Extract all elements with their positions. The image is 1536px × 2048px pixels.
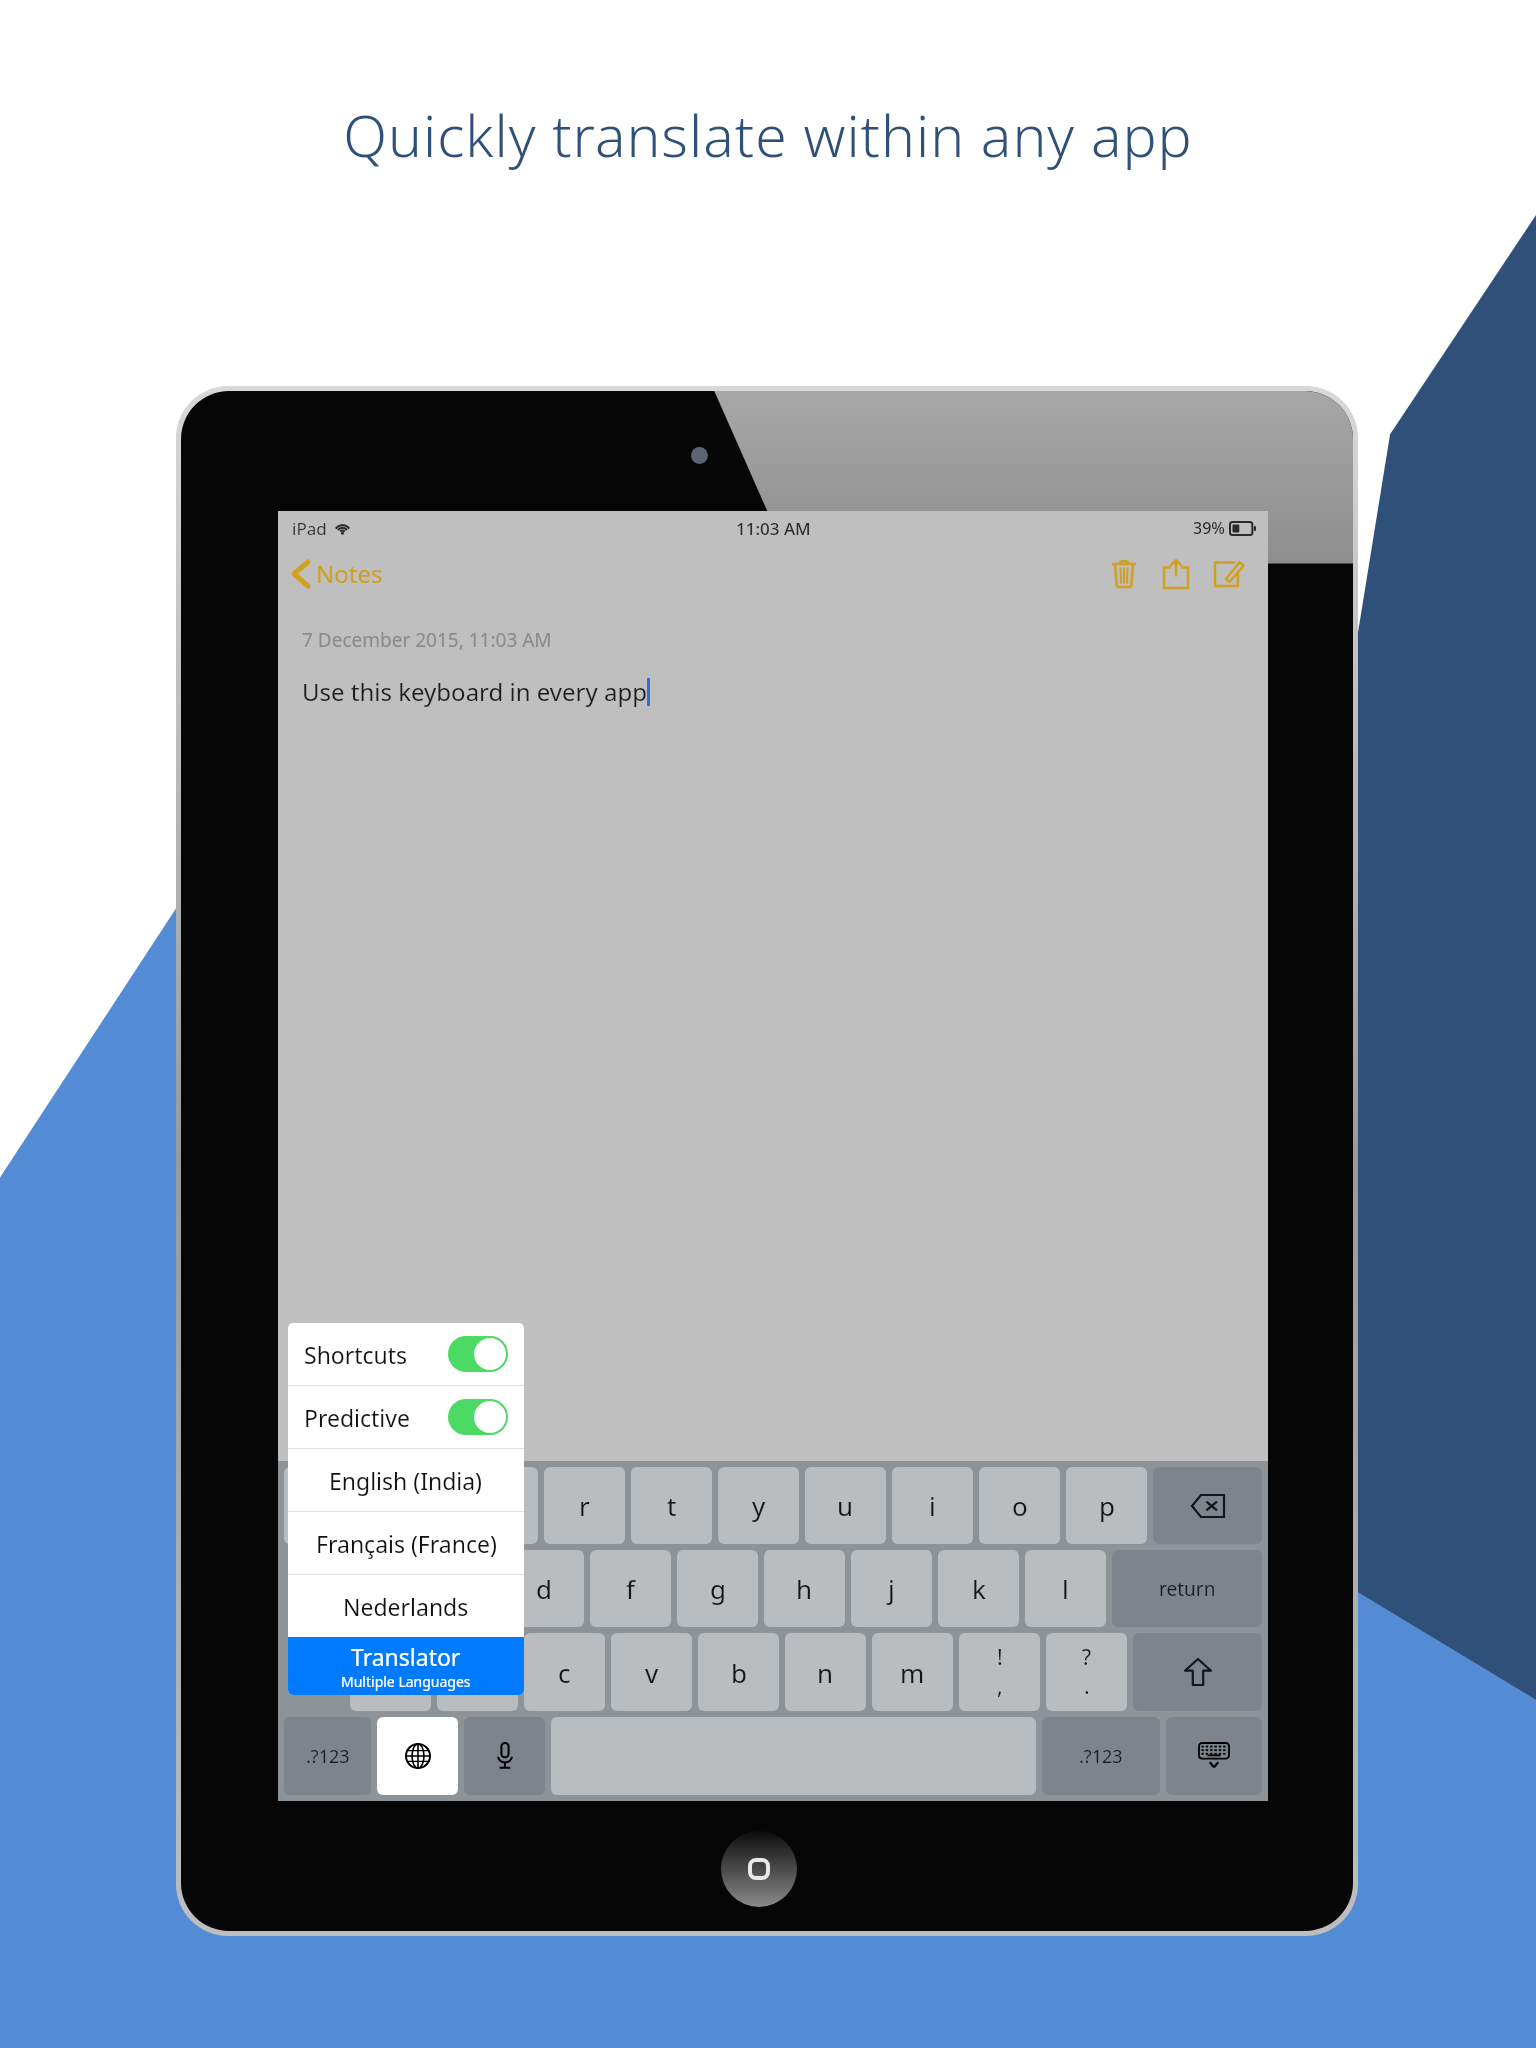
staticText: r xyxy=(579,1488,590,1523)
staticText: b xyxy=(731,1655,747,1690)
staticText: e xyxy=(490,1488,505,1523)
staticText: w xyxy=(400,1488,421,1523)
button[interactable]: Nederlands xyxy=(288,1575,524,1637)
staticText: v xyxy=(645,1655,659,1690)
staticText: c xyxy=(558,1655,571,1690)
staticText: Nederlands xyxy=(343,1591,469,1622)
staticText: h xyxy=(796,1571,813,1606)
staticText: .?123 xyxy=(1079,1744,1123,1769)
button[interactable]: w xyxy=(370,1467,451,1544)
button[interactable]: g xyxy=(677,1550,758,1627)
button[interactable]: Share xyxy=(1150,547,1202,599)
button[interactable]: p xyxy=(1066,1467,1147,1544)
staticText: i xyxy=(929,1488,936,1523)
button[interactable]: Français (France) xyxy=(288,1512,524,1574)
button[interactable]: f xyxy=(590,1550,671,1627)
button[interactable]: Hide keyboard xyxy=(1166,1717,1262,1795)
staticText: q xyxy=(316,1488,332,1523)
staticText: Français (France) xyxy=(316,1528,497,1559)
staticText: l xyxy=(1062,1571,1069,1606)
button[interactable]: v xyxy=(611,1633,692,1711)
button[interactable]: Delete xyxy=(1098,547,1150,599)
button[interactable]: j xyxy=(851,1550,932,1627)
button[interactable]: Shortcuts xyxy=(288,1323,524,1385)
staticText: 7 December 2015, 11:03 AM xyxy=(302,627,552,653)
button[interactable]: Dictate xyxy=(464,1717,545,1795)
button[interactable]: t xyxy=(631,1467,712,1544)
button[interactable] xyxy=(1133,1633,1262,1711)
button[interactable]: a xyxy=(329,1550,410,1627)
button[interactable]: y xyxy=(718,1467,799,1544)
button[interactable]: d xyxy=(503,1550,584,1627)
button[interactable]: r xyxy=(544,1467,625,1544)
button[interactable]: l xyxy=(1025,1550,1106,1627)
staticText: ? xyxy=(1082,1643,1092,1672)
button[interactable]: .?123 xyxy=(284,1717,371,1795)
button[interactable]: b xyxy=(698,1633,779,1711)
staticText: g xyxy=(710,1571,726,1606)
button[interactable]: i xyxy=(892,1467,973,1544)
staticText: m xyxy=(900,1655,925,1690)
button[interactable]: Predictive xyxy=(288,1386,524,1448)
staticText: 39% xyxy=(1193,517,1225,539)
button[interactable]: z xyxy=(350,1633,431,1711)
staticText: Notes xyxy=(316,557,383,590)
staticText: t xyxy=(667,1488,677,1523)
staticText: z xyxy=(384,1655,397,1690)
button[interactable]: New note xyxy=(1202,547,1254,599)
staticText: Shortcuts xyxy=(304,1339,408,1370)
staticText: ! xyxy=(997,1643,1003,1672)
staticText: d xyxy=(536,1571,552,1606)
staticText: Quickly translate within any app xyxy=(343,96,1193,174)
button[interactable]: s xyxy=(416,1550,497,1627)
staticText: o xyxy=(1012,1488,1028,1523)
staticText: Multiple Languages xyxy=(341,1672,471,1691)
button[interactable] xyxy=(1153,1467,1262,1544)
staticText: p xyxy=(1099,1488,1115,1523)
staticText: j xyxy=(888,1571,895,1606)
button[interactable]: o xyxy=(979,1467,1060,1544)
button[interactable]: c xyxy=(524,1633,605,1711)
staticText: . xyxy=(1084,1672,1090,1701)
staticText: n xyxy=(817,1655,834,1690)
button[interactable]: k xyxy=(938,1550,1019,1627)
staticText: , xyxy=(997,1672,1003,1701)
staticText: k xyxy=(972,1571,986,1606)
staticText: s xyxy=(450,1571,463,1606)
button[interactable]: Notes xyxy=(278,551,395,596)
button[interactable]: q xyxy=(284,1467,364,1544)
staticText: Translator xyxy=(351,1641,461,1672)
button[interactable]: English (India) xyxy=(288,1449,524,1511)
button[interactable]: Translator xyxy=(288,1637,524,1695)
staticText: y xyxy=(752,1488,766,1523)
staticText: .?123 xyxy=(306,1744,350,1769)
button[interactable]: u xyxy=(805,1467,886,1544)
button[interactable]: n xyxy=(785,1633,866,1711)
staticText: a xyxy=(362,1571,377,1606)
button[interactable]: Switch keyboard xyxy=(377,1717,458,1795)
button[interactable]: ? xyxy=(1046,1633,1127,1711)
staticText: iPad xyxy=(292,517,327,540)
staticText: 11:03 AM xyxy=(736,517,811,540)
button[interactable]: ! xyxy=(959,1633,1040,1711)
button[interactable]: return xyxy=(1112,1550,1262,1627)
staticText: return xyxy=(1159,1576,1216,1602)
staticText: Use this keyboard in every app xyxy=(302,675,647,708)
button[interactable]: m xyxy=(872,1633,953,1711)
staticText: English (India) xyxy=(329,1465,483,1496)
staticText: Predictive xyxy=(304,1402,410,1433)
button[interactable]: h xyxy=(764,1550,845,1627)
button[interactable]: .?123 xyxy=(1042,1717,1160,1795)
button[interactable]: x xyxy=(437,1633,518,1711)
staticText: f xyxy=(626,1571,635,1606)
staticText: u xyxy=(837,1488,854,1523)
button[interactable]: e xyxy=(457,1467,538,1544)
